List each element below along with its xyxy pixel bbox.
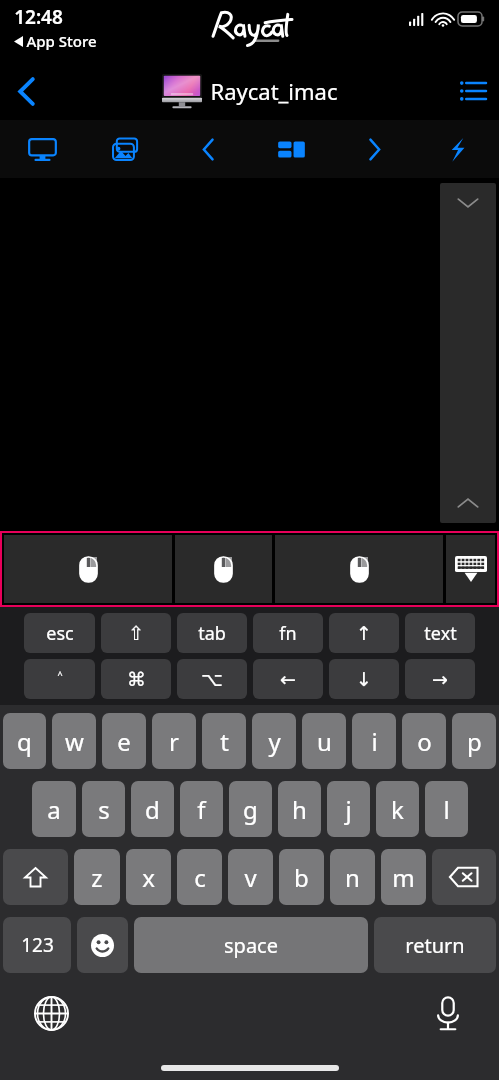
staticText: s bbox=[98, 793, 110, 826]
button[interactable]: Dictate bbox=[421, 986, 475, 1040]
button[interactable]: Display bbox=[0, 120, 84, 178]
button[interactable]: j bbox=[327, 781, 370, 837]
button[interactable]: Menu bbox=[447, 65, 499, 117]
button[interactable]: Middle click bbox=[175, 535, 272, 603]
button[interactable]: p bbox=[452, 713, 496, 769]
button[interactable]: → bbox=[405, 659, 475, 699]
staticText: o bbox=[417, 725, 432, 758]
staticText: tab bbox=[198, 621, 226, 646]
staticText: ← bbox=[280, 668, 296, 690]
button[interactable]: Shortcuts bbox=[416, 120, 499, 178]
staticText: 123 bbox=[21, 932, 54, 958]
staticText: → bbox=[432, 668, 448, 690]
button[interactable]: return bbox=[374, 917, 496, 973]
staticText: b bbox=[294, 861, 309, 894]
button[interactable]: space bbox=[134, 917, 368, 973]
button[interactable]: Next bbox=[333, 120, 416, 178]
button[interactable]: l bbox=[425, 781, 468, 837]
staticText: c bbox=[194, 861, 206, 894]
button[interactable]: v bbox=[228, 849, 273, 905]
button[interactable]: ↓ bbox=[329, 659, 399, 699]
button[interactable]: ⌘ bbox=[101, 659, 171, 699]
staticText: fn bbox=[279, 621, 297, 646]
button[interactable]: esc bbox=[24, 613, 95, 653]
staticText: Raycat_imac bbox=[210, 76, 338, 106]
button[interactable]: ⌥ bbox=[177, 659, 247, 699]
staticText: f bbox=[197, 793, 206, 826]
staticText: m bbox=[392, 861, 415, 894]
button[interactable]: Emoji bbox=[77, 917, 128, 973]
staticText: space bbox=[224, 932, 278, 959]
staticText: ⇧ bbox=[128, 622, 144, 644]
button[interactable]: s bbox=[82, 781, 125, 837]
button[interactable]: ˄ bbox=[24, 659, 95, 699]
staticText: p bbox=[467, 725, 482, 758]
button[interactable]: b bbox=[279, 849, 324, 905]
staticText: esc bbox=[46, 621, 74, 646]
button[interactable]: Photos bbox=[84, 120, 167, 178]
button[interactable]: 123 bbox=[3, 917, 71, 973]
button[interactable]: Scroll up bbox=[440, 483, 496, 523]
button[interactable]: o bbox=[402, 713, 446, 769]
button[interactable]: Layout bbox=[250, 120, 333, 178]
staticText: y bbox=[268, 725, 281, 758]
staticText: e bbox=[117, 725, 131, 758]
staticText: text bbox=[424, 621, 457, 646]
staticText: j bbox=[345, 793, 352, 826]
button[interactable]: r bbox=[152, 713, 196, 769]
button[interactable]: tab bbox=[177, 613, 247, 653]
button[interactable]: e bbox=[102, 713, 146, 769]
button[interactable]: a bbox=[32, 781, 76, 837]
button[interactable]: n bbox=[330, 849, 375, 905]
button[interactable]: fn bbox=[253, 613, 323, 653]
button[interactable]: Scroll down bbox=[440, 183, 496, 223]
staticText: 12:48 bbox=[14, 4, 63, 30]
button[interactable]: Previous bbox=[167, 120, 250, 178]
button[interactable]: u bbox=[302, 713, 346, 769]
staticText: z bbox=[91, 861, 103, 894]
staticText: ↓ bbox=[356, 668, 372, 690]
staticText: n bbox=[345, 861, 360, 894]
staticText: w bbox=[65, 725, 84, 758]
staticText: r bbox=[169, 725, 179, 758]
staticText: h bbox=[292, 793, 307, 826]
staticText: q bbox=[17, 725, 32, 758]
button[interactable]: Next keyboard bbox=[24, 986, 78, 1040]
button[interactable]: m bbox=[381, 849, 426, 905]
button[interactable]: text bbox=[405, 613, 475, 653]
button[interactable]: Back bbox=[0, 65, 52, 117]
button[interactable]: k bbox=[376, 781, 419, 837]
button[interactable]: w bbox=[52, 713, 96, 769]
button[interactable]: x bbox=[126, 849, 171, 905]
button[interactable]: Right click bbox=[275, 535, 443, 603]
button[interactable]: Shift bbox=[3, 849, 68, 905]
button[interactable]: z bbox=[74, 849, 120, 905]
staticText: x bbox=[142, 861, 155, 894]
button[interactable]: q bbox=[3, 713, 46, 769]
button[interactable]: g bbox=[229, 781, 272, 837]
button[interactable]: Hide keyboard bbox=[446, 535, 495, 603]
button[interactable]: Left click bbox=[4, 535, 172, 603]
staticText: ⌥ bbox=[201, 668, 223, 690]
button[interactable]: t bbox=[202, 713, 246, 769]
button[interactable]: c bbox=[177, 849, 222, 905]
staticText: a bbox=[47, 793, 61, 826]
staticText: k bbox=[391, 793, 404, 826]
button[interactable]: d bbox=[131, 781, 174, 837]
staticText: ⌘ bbox=[127, 668, 146, 690]
staticText: return bbox=[405, 932, 465, 959]
staticText: d bbox=[145, 793, 160, 826]
button[interactable]: y bbox=[252, 713, 296, 769]
staticText: g bbox=[243, 793, 258, 826]
button[interactable]: ⇧ bbox=[101, 613, 171, 653]
button[interactable]: ← bbox=[253, 659, 323, 699]
staticText: ˄ bbox=[57, 667, 63, 692]
staticText: ↑ bbox=[356, 622, 372, 644]
staticText: l bbox=[443, 793, 450, 826]
button[interactable]: Backspace bbox=[432, 849, 496, 905]
staticText: v bbox=[244, 861, 257, 894]
button[interactable]: ↑ bbox=[329, 613, 399, 653]
button[interactable]: f bbox=[180, 781, 223, 837]
button[interactable]: h bbox=[278, 781, 321, 837]
button[interactable]: i bbox=[352, 713, 396, 769]
